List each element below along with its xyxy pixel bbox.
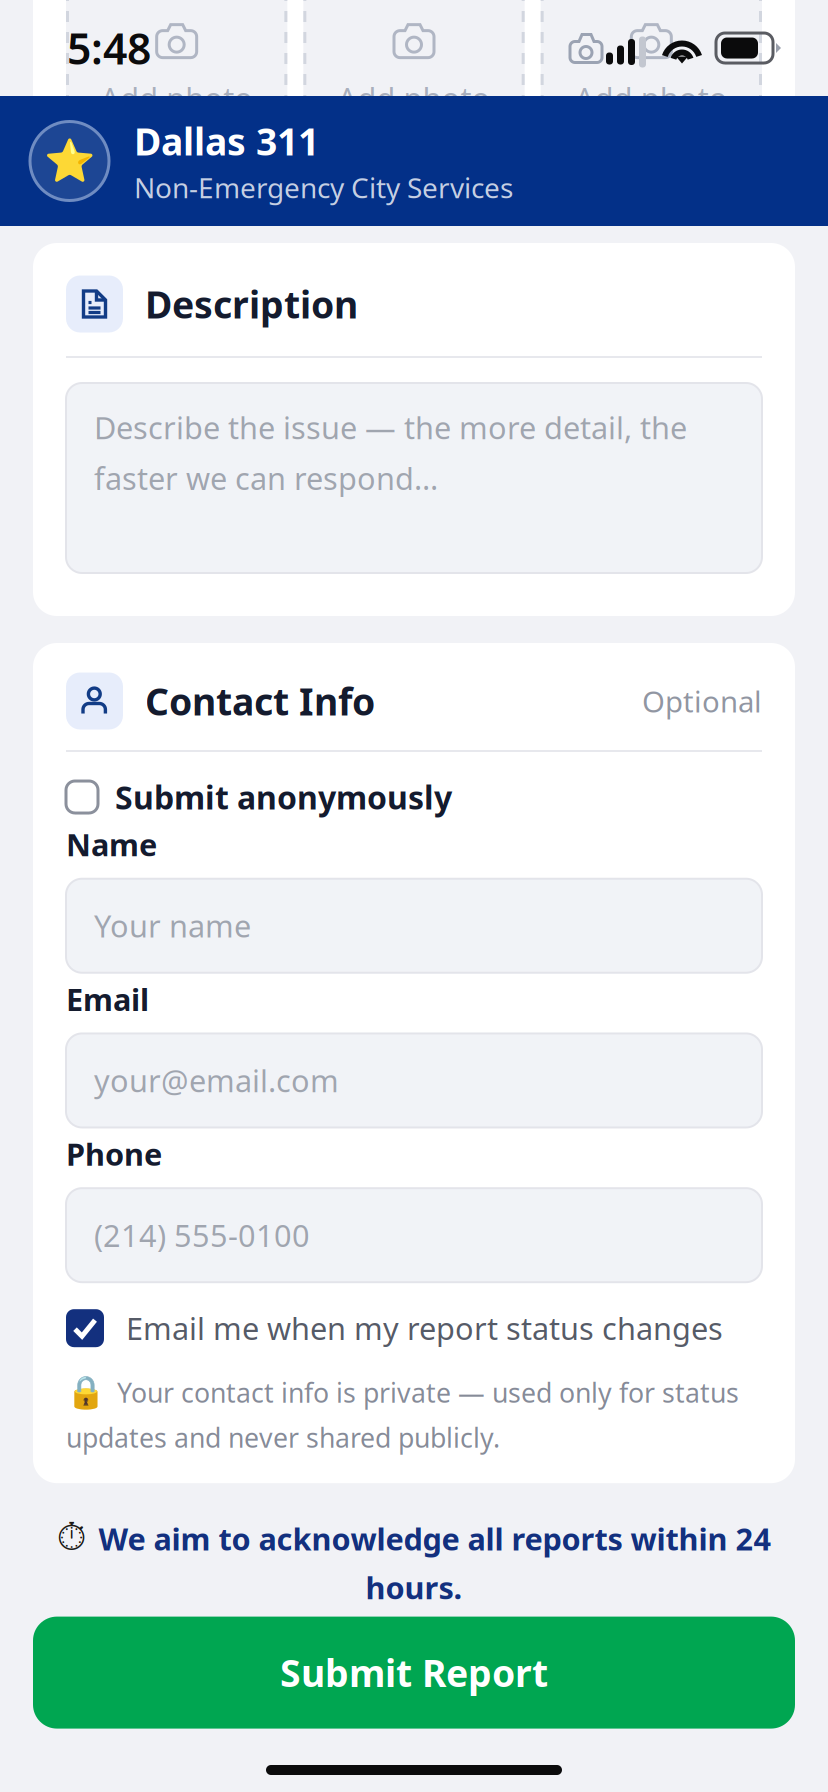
staticText: Your name [94,905,251,946]
button[interactable]: Submit anonymously [33,752,795,818]
staticText: your@email.com [94,1060,339,1101]
staticText: Phone [66,1133,162,1174]
staticText: Your contact info is private — used only… [117,1375,739,1410]
staticText: 🔒 [66,1374,106,1411]
staticText: Add photo [575,78,728,118]
staticText: Email [66,979,149,1019]
staticText: faster we can respond… [94,458,438,498]
staticText: Submit anonymously [115,776,452,818]
staticText: Submit Report [280,1648,548,1697]
staticText: ⭐ [44,137,95,185]
staticText: Contact Info [145,676,375,726]
staticText: Dallas 311 [134,116,319,166]
staticText: Description [145,279,358,329]
staticText: hours. [365,1567,462,1608]
staticText: updates and never shared publicly. [66,1420,500,1455]
staticText: Add photo [100,78,253,118]
button[interactable]: Submit Report [33,1617,795,1729]
staticText: Add photo [337,78,490,118]
staticText: Non-Emergency City Services [134,169,513,206]
staticText: (214) 555-0100 [94,1215,310,1255]
button[interactable]: Email me when my report status changes [33,1282,795,1374]
staticText: We aim to acknowledge all reports within… [98,1518,771,1559]
staticText: ⏱ [56,1520,86,1557]
staticText: Email me when my report status changes [126,1308,723,1348]
staticText: Describe the issue — the more detail, th… [94,407,687,448]
staticText: 5:48 [67,20,151,76]
staticText: Name [66,824,157,865]
staticText: Optional [642,681,762,720]
